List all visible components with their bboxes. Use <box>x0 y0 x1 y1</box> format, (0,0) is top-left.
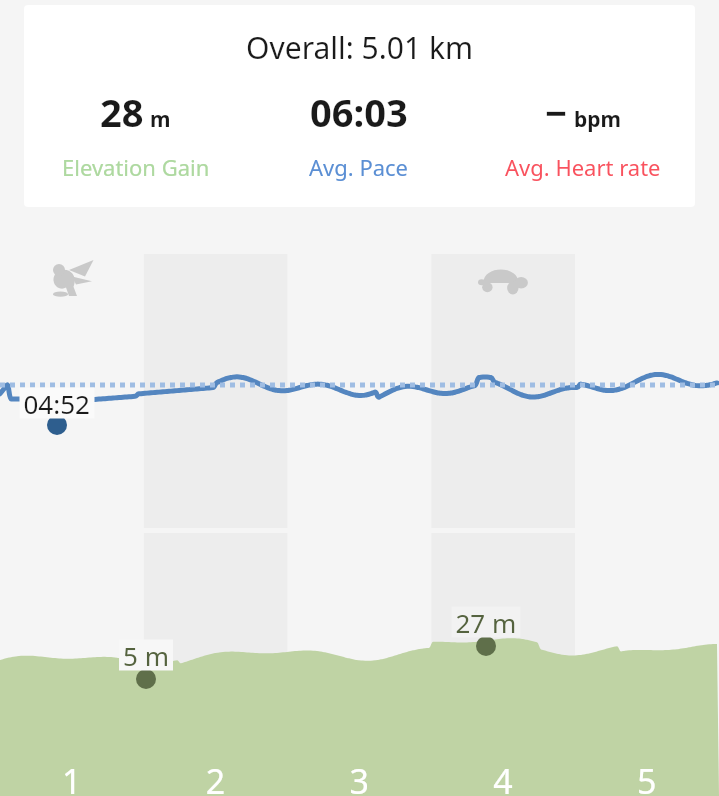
staticText: Avg. Pace <box>309 152 409 182</box>
button[interactable]: Pace and elevation charts <box>0 0 719 796</box>
staticText: Elevation Gain <box>62 152 210 182</box>
button[interactable]: 06:03 <box>247 86 471 182</box>
staticText: m <box>150 105 171 134</box>
button[interactable]: Overall: 5.01 km <box>24 5 695 207</box>
staticText: bpm <box>574 105 622 134</box>
button[interactable]: − <box>471 86 695 182</box>
staticText: 06:03 <box>310 86 408 138</box>
button[interactable]: 28 <box>24 86 247 182</box>
staticText: 28 <box>100 86 144 138</box>
staticText: − <box>545 86 568 138</box>
staticText: Avg. Heart rate <box>505 152 661 182</box>
staticText: Overall: 5.01 km <box>24 27 695 68</box>
